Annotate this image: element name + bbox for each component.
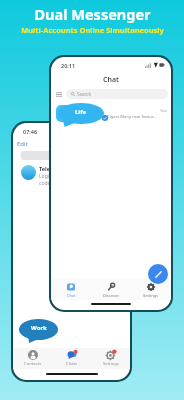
button[interactable]: Chat bbox=[51, 283, 91, 298]
staticText: Open In Web A Digest Many new featur… bbox=[76, 114, 157, 120]
staticText: Discover bbox=[103, 293, 120, 298]
staticText: Edit bbox=[17, 140, 28, 148]
other: Menu bbox=[56, 92, 62, 97]
staticText: Chat bbox=[103, 75, 119, 85]
staticText: Work bbox=[31, 324, 47, 332]
button[interactable]: Chats bbox=[52, 350, 91, 367]
staticText: Telegram bbox=[39, 165, 65, 172]
staticText: Settings bbox=[143, 293, 159, 298]
staticText: Search bbox=[77, 91, 92, 97]
other: Settings bbox=[147, 283, 155, 291]
other: Chats bbox=[67, 350, 77, 360]
staticText: code bbox=[39, 180, 51, 187]
other: Chat bbox=[67, 283, 75, 291]
staticText: Chats bbox=[66, 361, 78, 367]
button[interactable]: Discover bbox=[91, 283, 131, 298]
button[interactable]: Settings bbox=[131, 283, 171, 298]
staticText: Login bbox=[39, 173, 53, 180]
staticText: Dual Messenger bbox=[34, 4, 151, 24]
staticText: 07:46 bbox=[23, 128, 38, 135]
staticText: Chat bbox=[67, 293, 76, 298]
staticText: 20:11 bbox=[61, 62, 76, 69]
other: Discover bbox=[107, 283, 115, 291]
staticText: Settings bbox=[103, 361, 119, 367]
staticText: Tue bbox=[160, 108, 167, 113]
staticText: Contacts bbox=[24, 361, 42, 367]
button[interactable]: Compose message bbox=[148, 264, 168, 284]
button[interactable]: Contacts bbox=[13, 350, 52, 367]
button[interactable]: Search bbox=[66, 89, 168, 99]
other: Settings bbox=[106, 350, 116, 360]
other: Contacts bbox=[28, 350, 38, 360]
staticText: Life bbox=[75, 108, 87, 116]
button[interactable]: Settings bbox=[91, 350, 130, 367]
staticText: Multi-Accounts Online Simultaneously bbox=[21, 25, 164, 35]
staticText: Rhino bbox=[76, 106, 92, 113]
